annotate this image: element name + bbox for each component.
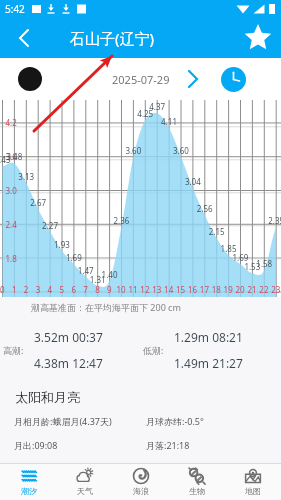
button[interactable]: Favorite bbox=[241, 18, 281, 58]
button[interactable]: 天气 bbox=[57, 464, 113, 500]
button[interactable]: 海浪 bbox=[113, 464, 169, 500]
button[interactable]: 地图 bbox=[225, 464, 281, 500]
staticText: 4.38m 12:47 bbox=[34, 355, 103, 371]
staticText: 5:42 bbox=[5, 2, 25, 16]
button[interactable]: Back bbox=[0, 18, 40, 58]
staticText: 月落:21:18 bbox=[146, 439, 190, 451]
staticText: 石山子(辽宁) bbox=[70, 28, 155, 48]
staticText: 高潮: bbox=[3, 344, 24, 356]
staticText: 低潮: bbox=[143, 344, 164, 356]
staticText: 天气 bbox=[77, 486, 93, 496]
staticText: 地图 bbox=[245, 486, 261, 496]
staticText: 生物 bbox=[189, 486, 205, 496]
staticText: 月球赤纬:-0.5° bbox=[146, 415, 204, 427]
staticText: 1.29m 08:21 bbox=[174, 329, 243, 345]
button[interactable]: Next day bbox=[180, 66, 206, 92]
staticText: 3.52m 00:37 bbox=[34, 329, 103, 345]
staticText: 海浪 bbox=[133, 486, 149, 496]
staticText: 月相月龄:蛾眉月(4.37天) bbox=[14, 415, 112, 427]
staticText: 潮高基准面：在平均海平面下 200 cm bbox=[31, 301, 181, 313]
button[interactable]: 潮汐 bbox=[0, 464, 57, 500]
staticText: 月出:09:08 bbox=[14, 439, 58, 451]
button[interactable]: 生物 bbox=[169, 464, 225, 500]
staticText: 潮汐 bbox=[21, 486, 37, 496]
staticText: 2025-07-29 bbox=[112, 72, 170, 87]
staticText: 太阳和月亮 bbox=[15, 389, 80, 405]
button[interactable]: Time bbox=[221, 67, 246, 92]
staticText: 1.49m 21:27 bbox=[174, 355, 243, 371]
